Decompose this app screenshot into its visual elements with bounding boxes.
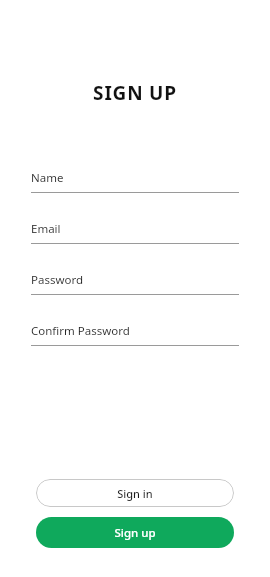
staticText: Email (31, 221, 61, 237)
staticText: Password (31, 272, 84, 288)
button[interactable]: Password (31, 265, 239, 295)
button[interactable]: Sign up (36, 517, 234, 548)
staticText: SIGN UP (93, 80, 177, 106)
button[interactable]: Confirm Password (31, 316, 239, 346)
button[interactable]: Name (31, 163, 239, 193)
button[interactable]: Sign in (36, 479, 234, 507)
staticText: Confirm Password (31, 323, 130, 339)
staticText: Name (31, 170, 64, 186)
staticText: Sign in (117, 486, 153, 501)
button[interactable]: Email (31, 214, 239, 244)
staticText: Sign up (114, 525, 156, 541)
